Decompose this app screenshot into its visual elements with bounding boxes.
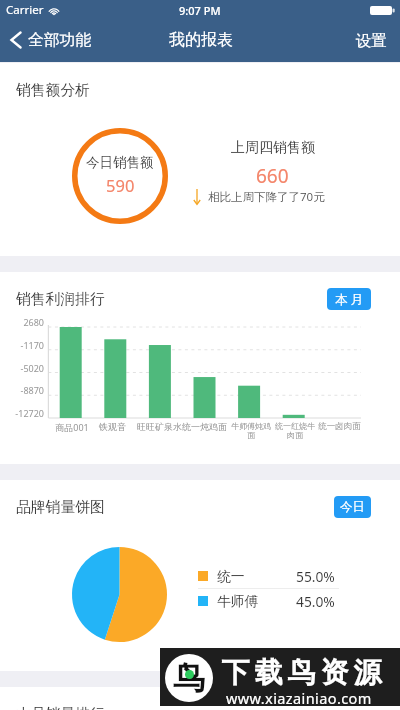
staticText: 统一卤肉面 [318,421,361,432]
staticText: 55.0% [296,567,335,586]
staticText: 本 月 [335,291,364,308]
staticText: 统一 [217,568,245,585]
button[interactable]: 本 月 [327,288,371,310]
staticText: 鸟 [173,658,205,698]
staticText: www.xiazainiao.com [226,688,372,708]
staticText: 商品001 [55,421,89,433]
staticText: -8870 [20,384,44,396]
staticText: 牛师傅炖鸡面 [230,421,272,441]
staticText: 销售额分析 [16,81,90,100]
staticText: 我的报表 [169,30,233,50]
staticText: 销售利润排行 [16,290,105,309]
staticText: -12720 [15,407,44,419]
staticText: 9:07 PM [179,3,221,18]
staticText: 下载鸟资源 [219,655,384,690]
staticText: -5020 [20,362,44,374]
staticText: 旺旺矿泉水统一炖鸡面 [137,421,227,432]
staticText: 本月销量排行 [16,705,105,710]
staticText: 牛师傅 [217,593,259,610]
button[interactable]: 牛师傅 [198,589,339,613]
staticText: 相比上周下降了了70元 [208,189,325,205]
staticText: 上周四销售额 [231,139,315,157]
staticText: 全部功能 [28,30,92,50]
staticText: 45.0% [296,592,335,611]
button[interactable]: 今日销售额 [72,128,168,224]
staticText: 2680 [23,316,44,328]
button[interactable]: 全部功能 [0,31,100,51]
staticText: 铁观音 [99,421,126,432]
staticText: 统一红烧牛肉面 [274,421,316,441]
staticText: 590 [106,174,135,196]
staticText: -1170 [20,339,44,351]
button[interactable]: 统一 [198,564,339,588]
staticText: 660 [256,163,289,189]
staticText: Carrier [6,2,44,18]
button[interactable]: 今日 [334,496,371,518]
staticText: 今日销售额 [86,154,154,171]
button[interactable]: 设置 [344,23,400,60]
staticText: 今日 [340,499,365,515]
staticText: 品牌销量饼图 [16,498,105,517]
